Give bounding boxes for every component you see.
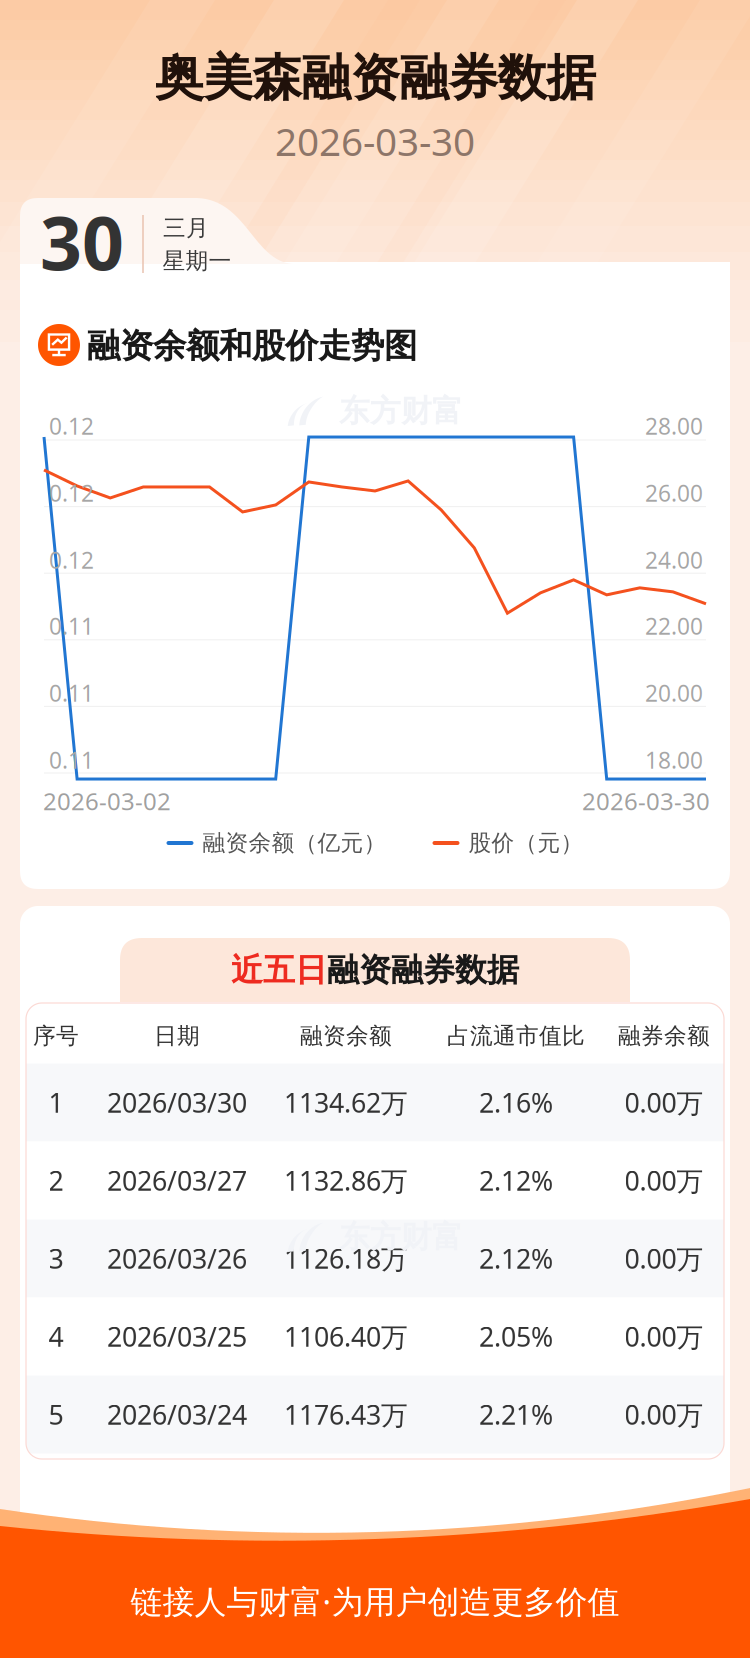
staticText: 1134.62万 bbox=[284, 1085, 408, 1120]
button[interactable]: 1 bbox=[26, 1063, 724, 1141]
staticText: 东方财富 bbox=[339, 392, 463, 430]
staticText: 2026-03-02 bbox=[43, 785, 171, 817]
staticText: 1176.43万 bbox=[284, 1397, 408, 1432]
staticText: 20.00 bbox=[645, 678, 703, 708]
staticText: 0.11 bbox=[49, 611, 94, 641]
staticText: 2.12% bbox=[479, 1241, 553, 1276]
staticText: 18.00 bbox=[645, 745, 703, 775]
staticText: 融券余额 bbox=[618, 1022, 710, 1050]
staticText: 4 bbox=[48, 1319, 63, 1354]
staticText: 0.00万 bbox=[624, 1397, 703, 1432]
button[interactable]: 4 bbox=[26, 1297, 724, 1375]
staticText: 1132.86万 bbox=[284, 1163, 408, 1198]
staticText: 0.00万 bbox=[624, 1163, 703, 1198]
staticText: 3 bbox=[48, 1241, 63, 1276]
staticText: 三月 bbox=[163, 214, 209, 242]
staticText: 2.21% bbox=[479, 1397, 553, 1432]
staticText: 28.00 bbox=[645, 411, 703, 441]
staticText: 2.12% bbox=[479, 1163, 553, 1198]
staticText: 2.05% bbox=[479, 1319, 553, 1354]
button[interactable]: 5 bbox=[26, 1375, 724, 1453]
staticText: 22.00 bbox=[645, 611, 703, 641]
staticText: 2 bbox=[48, 1163, 63, 1198]
staticText: 2026-03-30 bbox=[582, 785, 710, 817]
staticText: 星期一 bbox=[162, 247, 231, 275]
staticText: 0.00万 bbox=[624, 1241, 703, 1276]
staticText: 融资融券数据 bbox=[327, 950, 519, 990]
staticText: 融资余额 bbox=[300, 1022, 392, 1050]
staticText: 2026-03-30 bbox=[275, 115, 475, 167]
staticText: 近五日 bbox=[231, 950, 327, 990]
staticText: 5 bbox=[48, 1397, 63, 1432]
staticText: 24.00 bbox=[645, 545, 703, 575]
staticText: 链接人与财富·为用户创造更多价值 bbox=[130, 1580, 619, 1622]
staticText: 日期 bbox=[154, 1022, 200, 1050]
staticText: 2026/03/25 bbox=[107, 1319, 247, 1354]
staticText: 2026/03/27 bbox=[107, 1163, 247, 1198]
staticText: 东方财富 bbox=[339, 1218, 463, 1256]
staticText: 1126.18万 bbox=[284, 1241, 408, 1276]
staticText: 奥美森融资融券数据 bbox=[154, 48, 595, 108]
staticText: 0.11 bbox=[49, 745, 94, 775]
staticText: 0.00万 bbox=[624, 1085, 703, 1120]
staticText: 26.00 bbox=[645, 478, 703, 508]
staticText: 0.12 bbox=[49, 478, 94, 508]
staticText: 股价（元） bbox=[468, 829, 583, 857]
staticText: 2026/03/26 bbox=[107, 1241, 247, 1276]
staticText: 序号 bbox=[33, 1022, 79, 1050]
staticText: 融资余额（亿元） bbox=[202, 829, 386, 857]
staticText: 0.12 bbox=[49, 411, 94, 441]
staticText: 2.16% bbox=[479, 1085, 553, 1120]
button[interactable]: 3 bbox=[26, 1219, 724, 1297]
staticText: 占流通市值比 bbox=[447, 1022, 585, 1050]
staticText: 1 bbox=[48, 1085, 63, 1120]
button[interactable]: 序号 bbox=[26, 1008, 724, 1063]
staticText: 2026/03/30 bbox=[107, 1085, 247, 1120]
staticText: 0.00万 bbox=[624, 1319, 703, 1354]
staticText: 1106.40万 bbox=[284, 1319, 408, 1354]
staticText: 融资余额和股价走势图 bbox=[87, 325, 417, 366]
staticText: 2026/03/24 bbox=[107, 1397, 247, 1432]
staticText: 0.11 bbox=[49, 678, 94, 708]
staticText: 30 bbox=[40, 193, 124, 291]
staticText: 0.12 bbox=[49, 545, 94, 575]
button[interactable]: 2 bbox=[26, 1141, 724, 1219]
